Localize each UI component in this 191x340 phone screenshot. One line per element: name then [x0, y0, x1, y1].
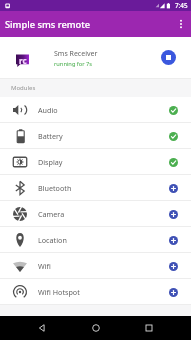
button[interactable]: More options: [171, 11, 191, 37]
button[interactable]: rc: [0, 37, 191, 78]
button[interactable]: Audio: [0, 97, 191, 123]
staticText: Simple sms remote: [5, 18, 91, 31]
button[interactable]: Recent apps: [138, 317, 160, 339]
staticText: Audio: [38, 105, 58, 115]
staticText: Modules: [11, 84, 36, 92]
button[interactable]: Home: [85, 317, 107, 339]
button[interactable]: Display: [0, 149, 191, 175]
button[interactable]: Back: [31, 317, 53, 339]
staticText: Camera: [38, 209, 65, 219]
staticText: Battery: [38, 131, 63, 141]
staticText: 7:45: [175, 1, 188, 10]
staticText: rc: [19, 55, 27, 66]
staticText: Sms Receiver: [54, 49, 98, 59]
staticText: running for 7s: [54, 60, 93, 68]
button[interactable]: Battery: [0, 123, 191, 149]
button[interactable]: Location: [0, 227, 191, 253]
staticText: Wifi: [38, 261, 51, 271]
staticText: Display: [38, 157, 63, 167]
button[interactable]: Stop service: [161, 50, 176, 65]
staticText: Location: [38, 235, 67, 245]
staticText: Bluetooth: [38, 183, 72, 193]
button[interactable]: Wifi Hotspot: [0, 279, 191, 305]
button[interactable]: Wifi: [0, 253, 191, 279]
button[interactable]: Bluetooth: [0, 175, 191, 201]
staticText: Wifi Hotspot: [38, 287, 80, 297]
button[interactable]: Camera: [0, 201, 191, 227]
